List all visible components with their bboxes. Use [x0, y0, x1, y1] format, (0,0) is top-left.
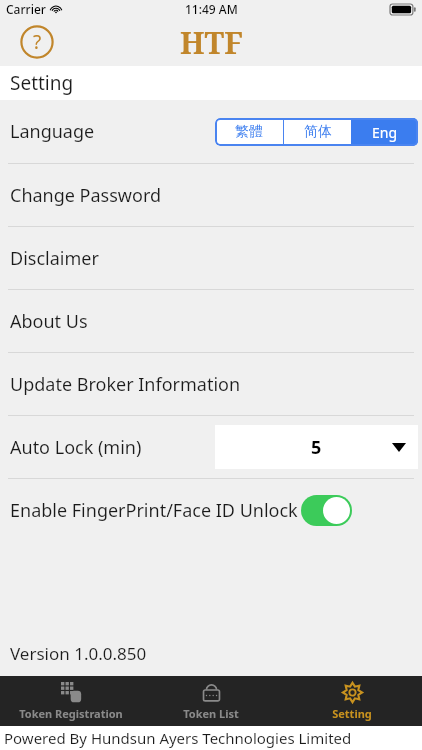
staticText: Carrier: [6, 1, 46, 17]
button[interactable]: 繁體: [215, 118, 283, 146]
button[interactable]: Token Registration: [1, 676, 141, 726]
staticText: Disclaimer: [10, 246, 99, 271]
staticText: Powered By Hundsun Ayers Technologies Li…: [4, 728, 352, 748]
button[interactable]: Disclaimer: [0, 227, 422, 289]
staticText: 11:49 AM: [185, 1, 238, 17]
staticText: 5: [311, 435, 322, 460]
button[interactable]: Help: [18, 23, 56, 61]
staticText: Language: [10, 119, 95, 144]
button[interactable]: Change Password: [0, 164, 422, 226]
staticText: Setting: [10, 70, 74, 96]
staticText: Auto Lock (min): [10, 435, 142, 460]
button[interactable]: 简体: [284, 118, 351, 146]
staticText: Token List: [183, 706, 239, 721]
staticText: ?: [33, 29, 42, 55]
button[interactable]: Update Broker Information: [0, 353, 422, 415]
staticText: 简体: [304, 123, 332, 141]
button[interactable]: Eng: [351, 118, 418, 146]
staticText: Token Registration: [19, 706, 123, 721]
staticText: Enable FingerPrint/Face ID Unlock: [10, 498, 298, 523]
staticText: HTF: [180, 22, 243, 63]
staticText: Version 1.0.0.850: [10, 642, 147, 665]
staticText: Change Password: [10, 183, 162, 208]
button[interactable]: Enable FingerPrint or Face ID Unlock: [301, 495, 352, 526]
staticText: Update Broker Information: [10, 372, 241, 397]
button[interactable]: Setting: [282, 676, 422, 726]
staticText: 繁體: [235, 123, 263, 141]
staticText: About Us: [10, 309, 88, 334]
button[interactable]: About Us: [0, 290, 422, 352]
staticText: Eng: [372, 123, 398, 142]
button[interactable]: Token List: [141, 676, 281, 726]
staticText: Setting: [332, 706, 372, 721]
button[interactable]: Auto lock minutes: [215, 425, 418, 469]
